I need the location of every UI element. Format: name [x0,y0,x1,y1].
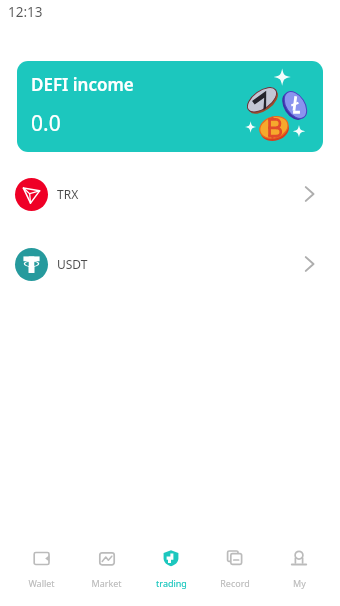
staticText: My [293,577,306,589]
button[interactable]: TRX [0,159,340,229]
other: Open TRX [301,186,317,202]
staticText: trading [156,577,187,589]
button[interactable]: Wallet [9,548,74,606]
button[interactable]: DEFI income [17,61,323,152]
button[interactable]: Record [203,548,267,606]
button[interactable]: Market [74,548,139,606]
button[interactable]: USDT [0,229,340,299]
staticText: USDT [57,256,88,272]
staticText: Wallet [28,577,55,589]
staticText: Market [91,577,122,589]
button[interactable]: trading [139,548,203,606]
staticText: Record [220,577,250,589]
button[interactable]: My [267,548,331,606]
staticText: 12:13 [8,3,43,21]
staticText: TRX [57,186,79,202]
staticText: DEFI income [31,73,134,96]
staticText: 0.0 [31,109,61,138]
other: Open USDT [301,256,317,272]
